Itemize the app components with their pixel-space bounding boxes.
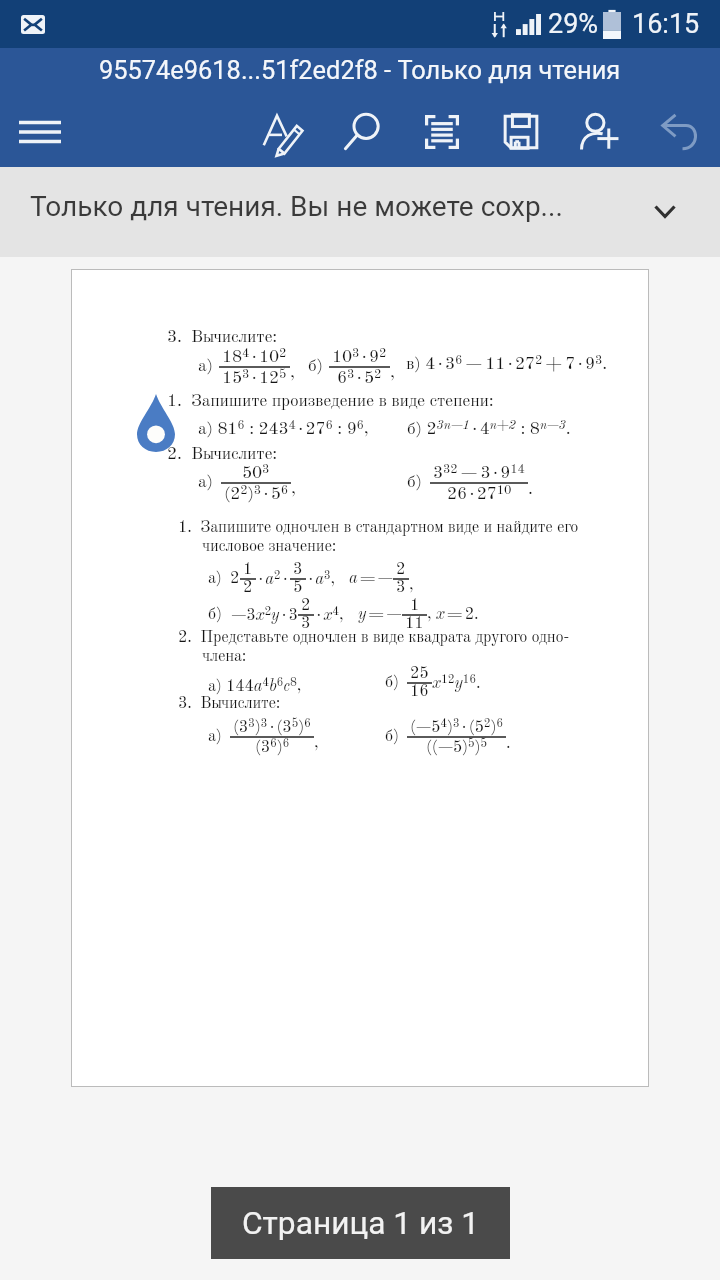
staticText: · a2 ·	[256, 570, 290, 588]
staticText: 153 · 125	[222, 368, 287, 387]
staticText: ,	[390, 365, 395, 383]
staticText: а)	[208, 729, 222, 745]
staticText: 3. Вычислите:	[167, 329, 277, 347]
staticText: −3x2y · 3	[231, 606, 298, 624]
staticText: 25	[410, 666, 429, 682]
staticText: б)	[308, 358, 323, 376]
staticText: a = −	[349, 571, 393, 587]
button[interactable]: Expand	[640, 186, 690, 236]
other: Text cursor	[137, 394, 175, 452]
button[interactable]: Search	[323, 96, 402, 167]
staticText: б)	[385, 729, 399, 745]
staticText: · a3,	[306, 570, 335, 588]
staticText: (36)6	[255, 738, 290, 756]
staticText: (22)3 · 56	[224, 484, 288, 503]
other: Mail	[21, 15, 45, 34]
staticText: 3. Вычислите:	[178, 696, 281, 712]
staticText: а)	[198, 474, 213, 492]
staticText: б)	[208, 607, 222, 623]
button[interactable]: Edit	[244, 96, 323, 167]
staticText: 184 · 102	[222, 347, 287, 366]
staticText: 63 · 52	[337, 368, 382, 387]
staticText: 1	[243, 562, 253, 578]
staticText: 3	[301, 616, 311, 632]
staticText: 16	[410, 684, 429, 700]
button[interactable]: Reflow	[402, 96, 481, 167]
staticText: 332 − 3 · 914	[433, 463, 525, 482]
staticText: 16:15	[632, 8, 700, 40]
staticText: б) 23n−1 · 4n+2 : 8n−3.	[407, 419, 571, 438]
button[interactable]: Menu	[2, 96, 78, 167]
staticText: ((−5)5)5	[426, 738, 488, 756]
staticText: 103 · 92	[332, 347, 387, 366]
staticText: Только для чтения. Вы не можете сохр...	[30, 190, 563, 223]
staticText: (−54)3 · (52)6	[410, 718, 503, 736]
staticText: .	[506, 736, 511, 752]
staticText: 3	[396, 580, 406, 596]
staticText: ,	[290, 365, 295, 383]
staticText: 5	[293, 580, 303, 596]
staticText: 2	[230, 571, 240, 587]
staticText: ,	[314, 736, 319, 752]
staticText: а)	[208, 571, 222, 587]
button[interactable]: Undo	[639, 96, 718, 167]
staticText: ,	[291, 481, 296, 499]
staticText: 29%	[548, 8, 599, 40]
staticText: 503	[242, 463, 270, 482]
staticText: y = −	[358, 607, 402, 623]
staticText: .	[528, 481, 533, 499]
staticText: Страница 1 из 1	[242, 1205, 480, 1242]
staticText: 1	[410, 598, 420, 614]
staticText: 1. Запишите произведение в виде степени:	[167, 393, 494, 411]
staticText: x12y16.	[432, 674, 481, 692]
staticText: 2. Вычислите:	[167, 446, 277, 464]
staticText: 2	[243, 580, 253, 596]
staticText: 2. Представьте одночлен в виде квадрата …	[178, 630, 570, 646]
staticText: 95574e9618...51f2ed2f8 - Только для чтен…	[99, 55, 621, 85]
staticText: 2	[396, 562, 406, 578]
staticText: , x = 2.	[427, 607, 479, 623]
staticText: числовое значение:	[202, 539, 337, 555]
button[interactable]: Save	[481, 96, 560, 167]
staticText: б)	[385, 675, 399, 691]
staticText: б)	[407, 474, 422, 492]
staticText: а) 816 : 2434 · 276 : 96,	[198, 419, 369, 438]
staticText: а)	[198, 358, 213, 376]
staticText: а) 144a4b6c8,	[208, 677, 302, 695]
staticText: 1. Запишите одночлен в стандартном виде …	[178, 520, 579, 536]
staticText: (33)3 · (35)6	[233, 718, 311, 736]
staticText: · x4,	[314, 606, 344, 624]
button[interactable]: Share	[560, 96, 639, 167]
staticText: члена:	[202, 649, 247, 665]
button[interactable]: Страница 1 из 1	[211, 1187, 510, 1259]
staticText: 26 · 2710	[447, 484, 512, 503]
staticText: в) 4 · 36 − 11 · 272 + 7 · 93.	[406, 354, 607, 373]
staticText: ,	[409, 578, 414, 594]
staticText: 3	[293, 562, 303, 578]
staticText: 11	[405, 616, 424, 632]
staticText: 2	[301, 598, 311, 614]
